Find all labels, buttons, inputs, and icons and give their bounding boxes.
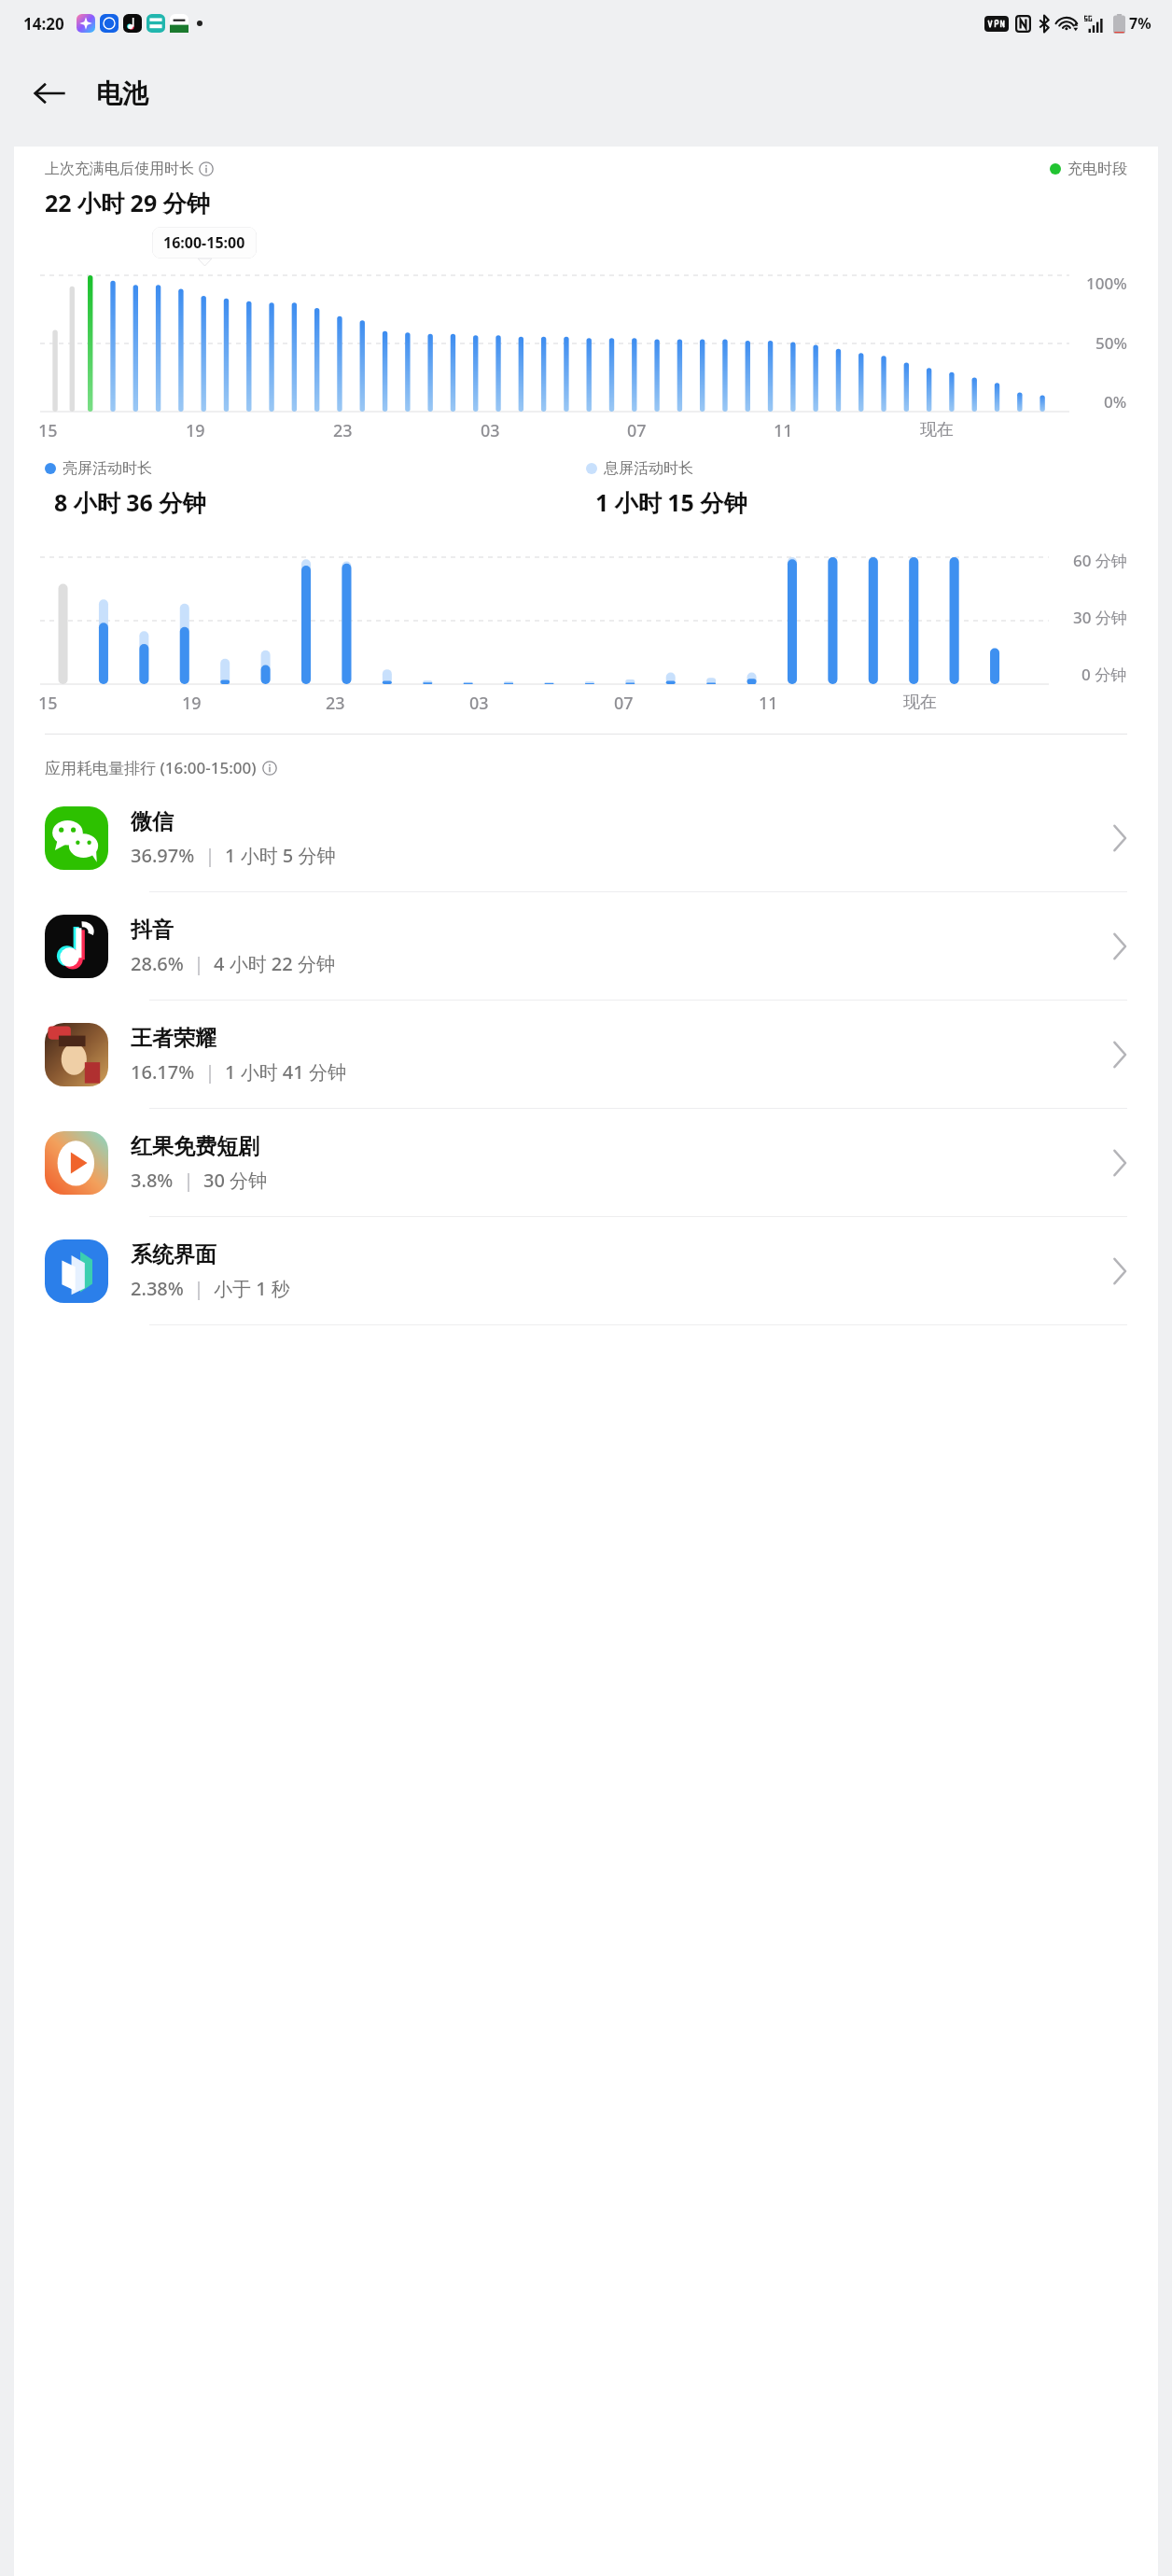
staticText: 抖音 [131,917,174,944]
staticText: 36.97% [131,843,195,868]
staticText: 4 小时 22 分钟 [214,951,335,976]
staticText: 15 [38,419,58,442]
staticText: 30 分钟 [203,1168,268,1193]
staticText: 系统界面 [131,1241,216,1268]
staticText: 王者荣耀 [131,1025,216,1052]
staticText: 28.6% [131,951,184,976]
staticText: 2.38% [131,1276,184,1301]
staticText: 1 小时 5 分钟 [225,843,336,868]
staticText: 23 [333,419,353,442]
staticText: 100% [1086,273,1127,294]
staticText: | [195,1059,225,1085]
staticText: 07 [614,692,634,715]
staticText: 1 小时 15 分钟 [595,486,747,518]
staticText: 7% [1129,13,1151,34]
staticText: 11 [759,692,778,715]
button[interactable]: 系统界面 [14,1217,1158,1324]
staticText: | [195,843,225,868]
staticText: 16.17% [131,1059,195,1085]
staticText: 22 小时 29 分钟 [45,187,210,218]
button[interactable]: 王者荣耀 [14,1001,1158,1108]
staticText: 亮屏活动时长 [63,459,152,478]
staticText: 息屏活动时长 [604,459,693,478]
staticText: 07 [627,419,647,442]
staticText: 微信 [131,808,174,835]
staticText: 19 [186,419,205,442]
staticText: 1 小时 41 分钟 [225,1059,346,1085]
staticText: 充电时段 [1067,160,1127,178]
button[interactable]: 微信 [14,784,1158,891]
staticText: 11 [774,419,793,442]
staticText: | [184,1276,214,1301]
staticText: | [184,951,214,976]
staticText: 03 [469,692,489,715]
staticText: 电池 [96,77,148,110]
staticText: 红果免费短剧 [131,1133,259,1160]
staticText: 50% [1095,332,1127,354]
staticText: 现在 [903,692,937,713]
staticText: 03 [481,419,500,442]
staticText: 60 分钟 [1073,550,1127,571]
staticText: 30 分钟 [1073,607,1127,628]
staticText: 23 [326,692,345,715]
staticText: 小于 1 秒 [214,1276,290,1301]
staticText: 上次充满电后使用时长 [45,160,194,178]
staticText: 0% [1104,391,1127,413]
staticText: 现在 [920,419,954,441]
staticText: 8 小时 36 分钟 [54,486,206,518]
staticText: 0 分钟 [1081,664,1127,685]
staticText: 3.8% [131,1168,174,1193]
staticText: 应用耗电量排行 (16:00-15:00) [45,757,257,778]
staticText: 16:00-15:00 [163,232,245,253]
button[interactable]: 抖音 [14,892,1158,1000]
staticText: 15 [38,692,58,715]
staticText: 14:20 [23,13,64,35]
staticText: | [174,1168,203,1193]
staticText: 19 [182,692,202,715]
button[interactable]: 红果免费短剧 [14,1109,1158,1216]
button[interactable]: Back [23,67,76,119]
